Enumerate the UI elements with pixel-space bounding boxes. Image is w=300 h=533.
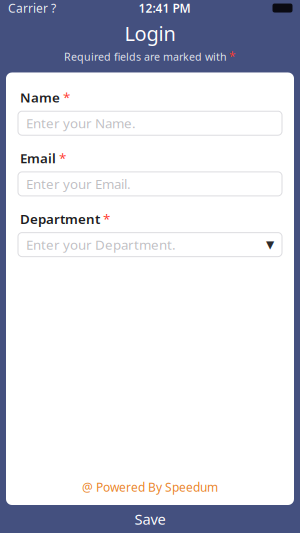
staticText: Enter your Email. [26, 175, 131, 193]
staticText: Department [20, 210, 100, 228]
staticText: @ Powered By Speedum [82, 479, 218, 495]
button[interactable]: Enter your Name. [18, 111, 282, 135]
staticText: * [229, 49, 236, 64]
staticText: Login [124, 20, 175, 47]
staticText: Name [20, 88, 60, 106]
staticText: * [59, 149, 66, 167]
button[interactable]: Enter your Department. [18, 233, 282, 257]
staticText: Email [20, 149, 56, 167]
staticText: Required fields are marked with [64, 49, 227, 64]
button[interactable]: Save [0, 505, 300, 533]
staticText: * [63, 88, 70, 106]
button[interactable]: Enter your Email. [18, 172, 282, 196]
staticText: 12:41 PM [138, 0, 190, 16]
staticText: Carrier [8, 0, 48, 16]
staticText: * [103, 210, 110, 228]
staticText: Enter your Name. [26, 114, 136, 132]
staticText: ? [48, 0, 56, 16]
staticText: Save [134, 509, 165, 529]
staticText: ▼ [266, 239, 274, 251]
staticText: Enter your Department. [26, 236, 176, 253]
